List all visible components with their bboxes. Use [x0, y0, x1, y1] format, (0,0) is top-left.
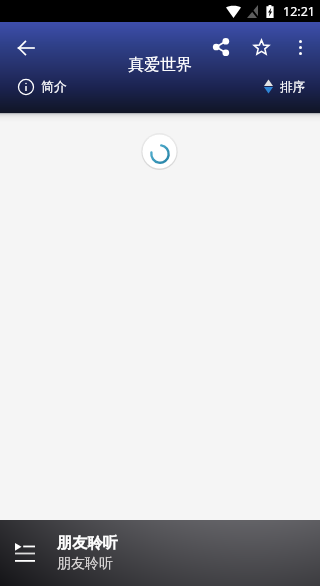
staticText: 排序	[280, 79, 305, 95]
button[interactable]: 简介	[18, 74, 67, 99]
button[interactable]: More options	[280, 23, 320, 71]
staticText: 简介	[41, 79, 67, 95]
staticText: 真爱世界	[0, 55, 320, 75]
staticText: 朋友聆听	[57, 533, 118, 552]
button[interactable]: Share	[200, 23, 242, 71]
staticText: 朋友聆听	[57, 555, 113, 573]
staticText: 12:21	[283, 3, 315, 20]
button[interactable]: 排序	[264, 75, 305, 98]
button[interactable]: 朋友聆听	[0, 520, 320, 586]
button[interactable]: Back	[2, 24, 50, 72]
button[interactable]: Favorite	[242, 23, 280, 71]
